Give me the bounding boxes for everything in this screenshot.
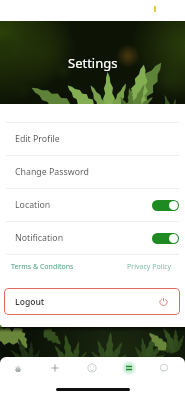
button[interactable]: Terms & Conditons: [11, 262, 74, 272]
button[interactable]: Notification: [0, 222, 185, 254]
button[interactable]: Menu: [120, 359, 138, 377]
button[interactable]: Edit Profile: [0, 123, 185, 155]
button[interactable]: Privacy Policy: [127, 262, 172, 272]
staticText: Notification: [15, 232, 64, 244]
button[interactable]: Change Password: [0, 156, 185, 188]
staticText: Change Password: [15, 166, 89, 178]
staticText: Logout: [15, 296, 45, 308]
button[interactable]: Add: [46, 359, 64, 377]
button[interactable]: Logout: [4, 288, 180, 315]
staticText: Settings: [68, 54, 118, 72]
button[interactable]: Home: [9, 359, 27, 377]
button[interactable]: Profile: [83, 359, 101, 377]
staticText: Edit Profile: [15, 133, 60, 145]
button[interactable]: Location: [0, 189, 185, 221]
staticText: Privacy Policy: [127, 262, 172, 272]
staticText: Location: [15, 199, 51, 211]
staticText: Terms & Conditons: [11, 262, 74, 272]
button[interactable]: Messages: [155, 359, 173, 377]
other: Power: [159, 297, 168, 306]
